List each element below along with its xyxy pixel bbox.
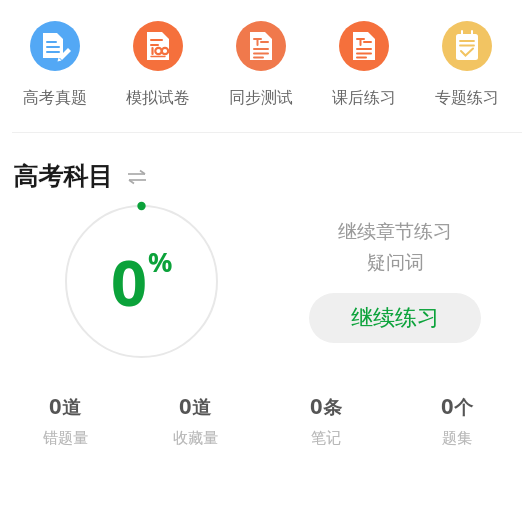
staticText: 疑问词 xyxy=(367,251,424,275)
staticText: 笔记 xyxy=(311,429,341,448)
staticText: 0 xyxy=(310,390,323,420)
staticText: 0 xyxy=(111,239,148,325)
staticText: 高考真题 xyxy=(23,88,87,108)
button[interactable]: 专题练习 xyxy=(415,21,518,108)
staticText: 错题量 xyxy=(43,429,88,448)
button[interactable]: 0 xyxy=(0,390,130,448)
staticText: 继续练习 xyxy=(351,304,439,332)
staticText: 高考科目 xyxy=(13,161,113,192)
staticText: 0 xyxy=(179,390,192,420)
button[interactable]: 高考科目 xyxy=(13,161,149,192)
staticText: 收藏量 xyxy=(173,429,218,448)
button[interactable]: 同步测试 xyxy=(209,21,312,108)
button[interactable]: 0 xyxy=(260,390,391,448)
staticText: % xyxy=(148,243,173,280)
staticText: 继续章节练习 xyxy=(338,220,452,244)
staticText: 0 xyxy=(441,390,454,420)
staticText: 专题练习 xyxy=(435,88,499,108)
button[interactable]: 课后练习 xyxy=(312,21,415,108)
staticText: 课后练习 xyxy=(332,88,396,108)
button[interactable]: 0 xyxy=(391,390,522,448)
staticText: 0 xyxy=(49,390,62,420)
staticText: 题集 xyxy=(442,429,472,448)
staticText: 条 xyxy=(323,396,342,420)
staticText: 道 xyxy=(62,396,81,420)
button[interactable]: 0 xyxy=(130,390,260,448)
button[interactable]: 高考真题 xyxy=(4,21,106,108)
staticText: 模拟试卷 xyxy=(126,88,190,108)
button[interactable]: 继续练习 xyxy=(309,293,481,343)
staticText: 个 xyxy=(454,396,473,420)
staticText: 同步测试 xyxy=(229,88,293,108)
staticText: 道 xyxy=(192,396,211,420)
other: 切换科目 xyxy=(125,165,149,189)
button[interactable]: 模拟试卷 xyxy=(106,21,209,108)
